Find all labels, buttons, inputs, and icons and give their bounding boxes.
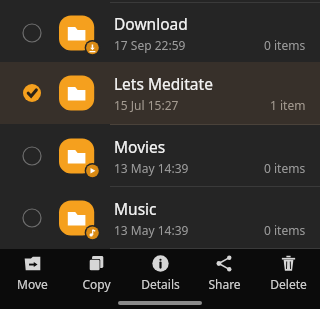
button[interactable]: Share bbox=[192, 255, 256, 292]
staticText: 17 Sep 22:59 bbox=[114, 37, 186, 53]
staticText: 13 May 14:39 bbox=[114, 160, 189, 176]
staticText: 0 items bbox=[264, 222, 306, 238]
button[interactable]: Copy bbox=[64, 255, 128, 292]
staticText: Lets Meditate bbox=[114, 73, 213, 94]
button[interactable]: Select bbox=[21, 22, 43, 44]
button[interactable]: Select bbox=[0, 3, 320, 62]
button[interactable]: Move bbox=[0, 255, 64, 292]
staticText: Move bbox=[17, 276, 48, 292]
staticText: 13 May 14:39 bbox=[114, 222, 189, 238]
button[interactable]: Details bbox=[128, 255, 192, 292]
staticText: Download bbox=[114, 13, 188, 34]
staticText: 15 Jul 15:27 bbox=[114, 97, 179, 113]
staticText: 0 items bbox=[264, 37, 306, 53]
button[interactable]: Select bbox=[21, 207, 43, 229]
button[interactable]: Select bbox=[21, 145, 43, 167]
staticText: Music bbox=[114, 198, 157, 219]
staticText: Movies bbox=[114, 136, 166, 157]
staticText: Copy bbox=[82, 276, 111, 292]
staticText: Details bbox=[141, 276, 180, 292]
button[interactable]: Select bbox=[0, 125, 320, 186]
staticText: 1 item bbox=[270, 97, 306, 113]
button[interactable]: Selected bbox=[0, 62, 320, 123]
button[interactable]: Selected bbox=[21, 82, 43, 104]
staticText: Share bbox=[208, 276, 241, 292]
button[interactable]: Delete bbox=[256, 255, 320, 292]
staticText: 0 items bbox=[264, 160, 306, 176]
staticText: Delete bbox=[270, 276, 307, 292]
button[interactable]: Select bbox=[0, 187, 320, 248]
